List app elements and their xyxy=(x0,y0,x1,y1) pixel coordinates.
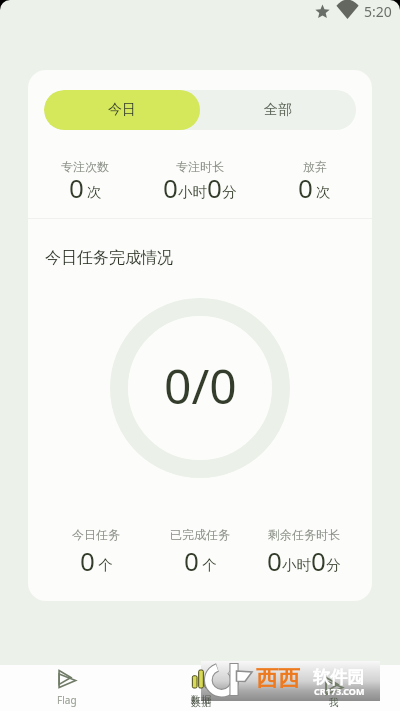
staticText: 放弃 xyxy=(303,159,327,174)
other: Flag xyxy=(58,670,76,688)
staticText: 0 xyxy=(80,543,95,578)
other: Data xyxy=(192,670,210,688)
staticText: 0 xyxy=(267,543,282,578)
staticText: 数据 xyxy=(191,696,211,709)
other: 我 xyxy=(325,677,343,695)
staticText: 数据 xyxy=(191,693,211,706)
staticText: 今日 xyxy=(108,101,136,119)
staticText: 次 xyxy=(87,183,102,201)
staticText: 剩余任务时长 xyxy=(268,527,340,542)
staticText: 5:20 xyxy=(364,2,392,21)
staticText: 小时 xyxy=(178,183,207,201)
staticText: 我 xyxy=(329,696,339,709)
staticText: 小时 xyxy=(282,556,311,574)
staticText: 专注次数 xyxy=(61,159,109,174)
staticText: 0 xyxy=(207,170,222,205)
button[interactable]: 今日 xyxy=(44,90,200,130)
staticText: 0 xyxy=(69,170,84,205)
button[interactable]: Data xyxy=(134,665,267,711)
staticText: 个 xyxy=(98,556,113,574)
staticText: 软件园 xyxy=(313,667,364,688)
staticText: 0 xyxy=(184,543,199,578)
staticText: 专注时长 xyxy=(176,159,224,174)
staticText: 0/0 xyxy=(164,353,237,418)
staticText: 次 xyxy=(316,183,331,201)
staticText: 西西 xyxy=(256,665,300,693)
staticText: 0 xyxy=(298,170,313,205)
staticText: 个 xyxy=(202,556,217,574)
staticText: 0 xyxy=(163,170,178,205)
staticText: 已完成任务 xyxy=(170,527,230,542)
staticText: 今日任务完成情况 xyxy=(45,248,173,268)
staticText: 今日任务 xyxy=(72,527,120,542)
button[interactable]: Flag xyxy=(0,665,134,711)
button[interactable]: 全部 xyxy=(200,90,356,130)
staticText: 分 xyxy=(326,556,341,574)
staticText: Flag xyxy=(57,693,77,707)
staticText: CR173.COM xyxy=(314,685,365,697)
button[interactable]: 我 xyxy=(267,665,400,711)
staticText: 分 xyxy=(222,183,237,201)
staticText: 全部 xyxy=(264,101,292,119)
staticText: 0 xyxy=(311,543,326,578)
